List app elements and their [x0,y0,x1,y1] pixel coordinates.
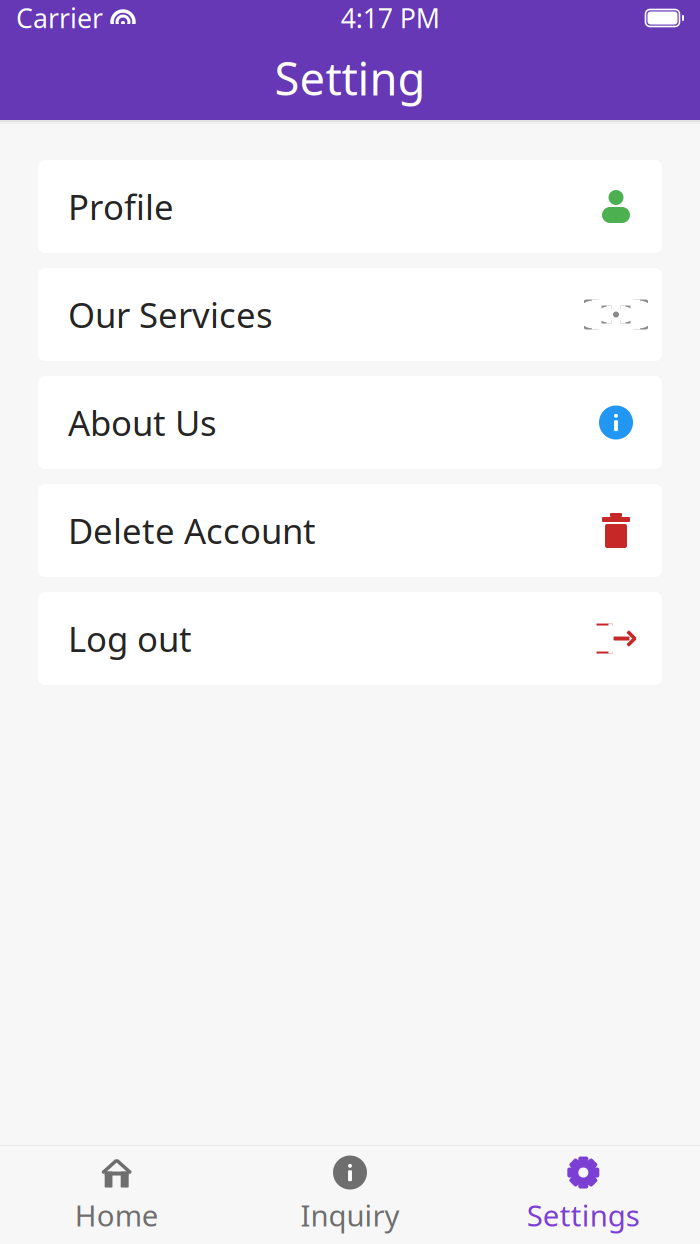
staticText: Settings [527,1195,640,1234]
staticText: Home [75,1195,159,1234]
staticText: Inquiry [300,1195,399,1234]
staticText: Our Services [68,291,273,337]
staticText: Profile [68,183,174,229]
button[interactable]: Our Services [38,268,662,361]
staticText: 4:17 PM [341,0,440,36]
staticText: Carrier [16,0,103,36]
button[interactable]: About Us [38,376,662,469]
button[interactable]: Settings [467,1146,700,1244]
staticText: Setting [274,48,425,108]
button[interactable]: Inquiry [233,1146,467,1244]
button[interactable]: Home [0,1146,233,1244]
button[interactable]: Profile [38,160,662,253]
staticText: Log out [68,615,192,661]
staticText: About Us [68,399,217,445]
staticText: Delete Account [68,507,316,553]
button[interactable]: Log out [38,592,662,685]
button[interactable]: Delete Account [38,484,662,577]
